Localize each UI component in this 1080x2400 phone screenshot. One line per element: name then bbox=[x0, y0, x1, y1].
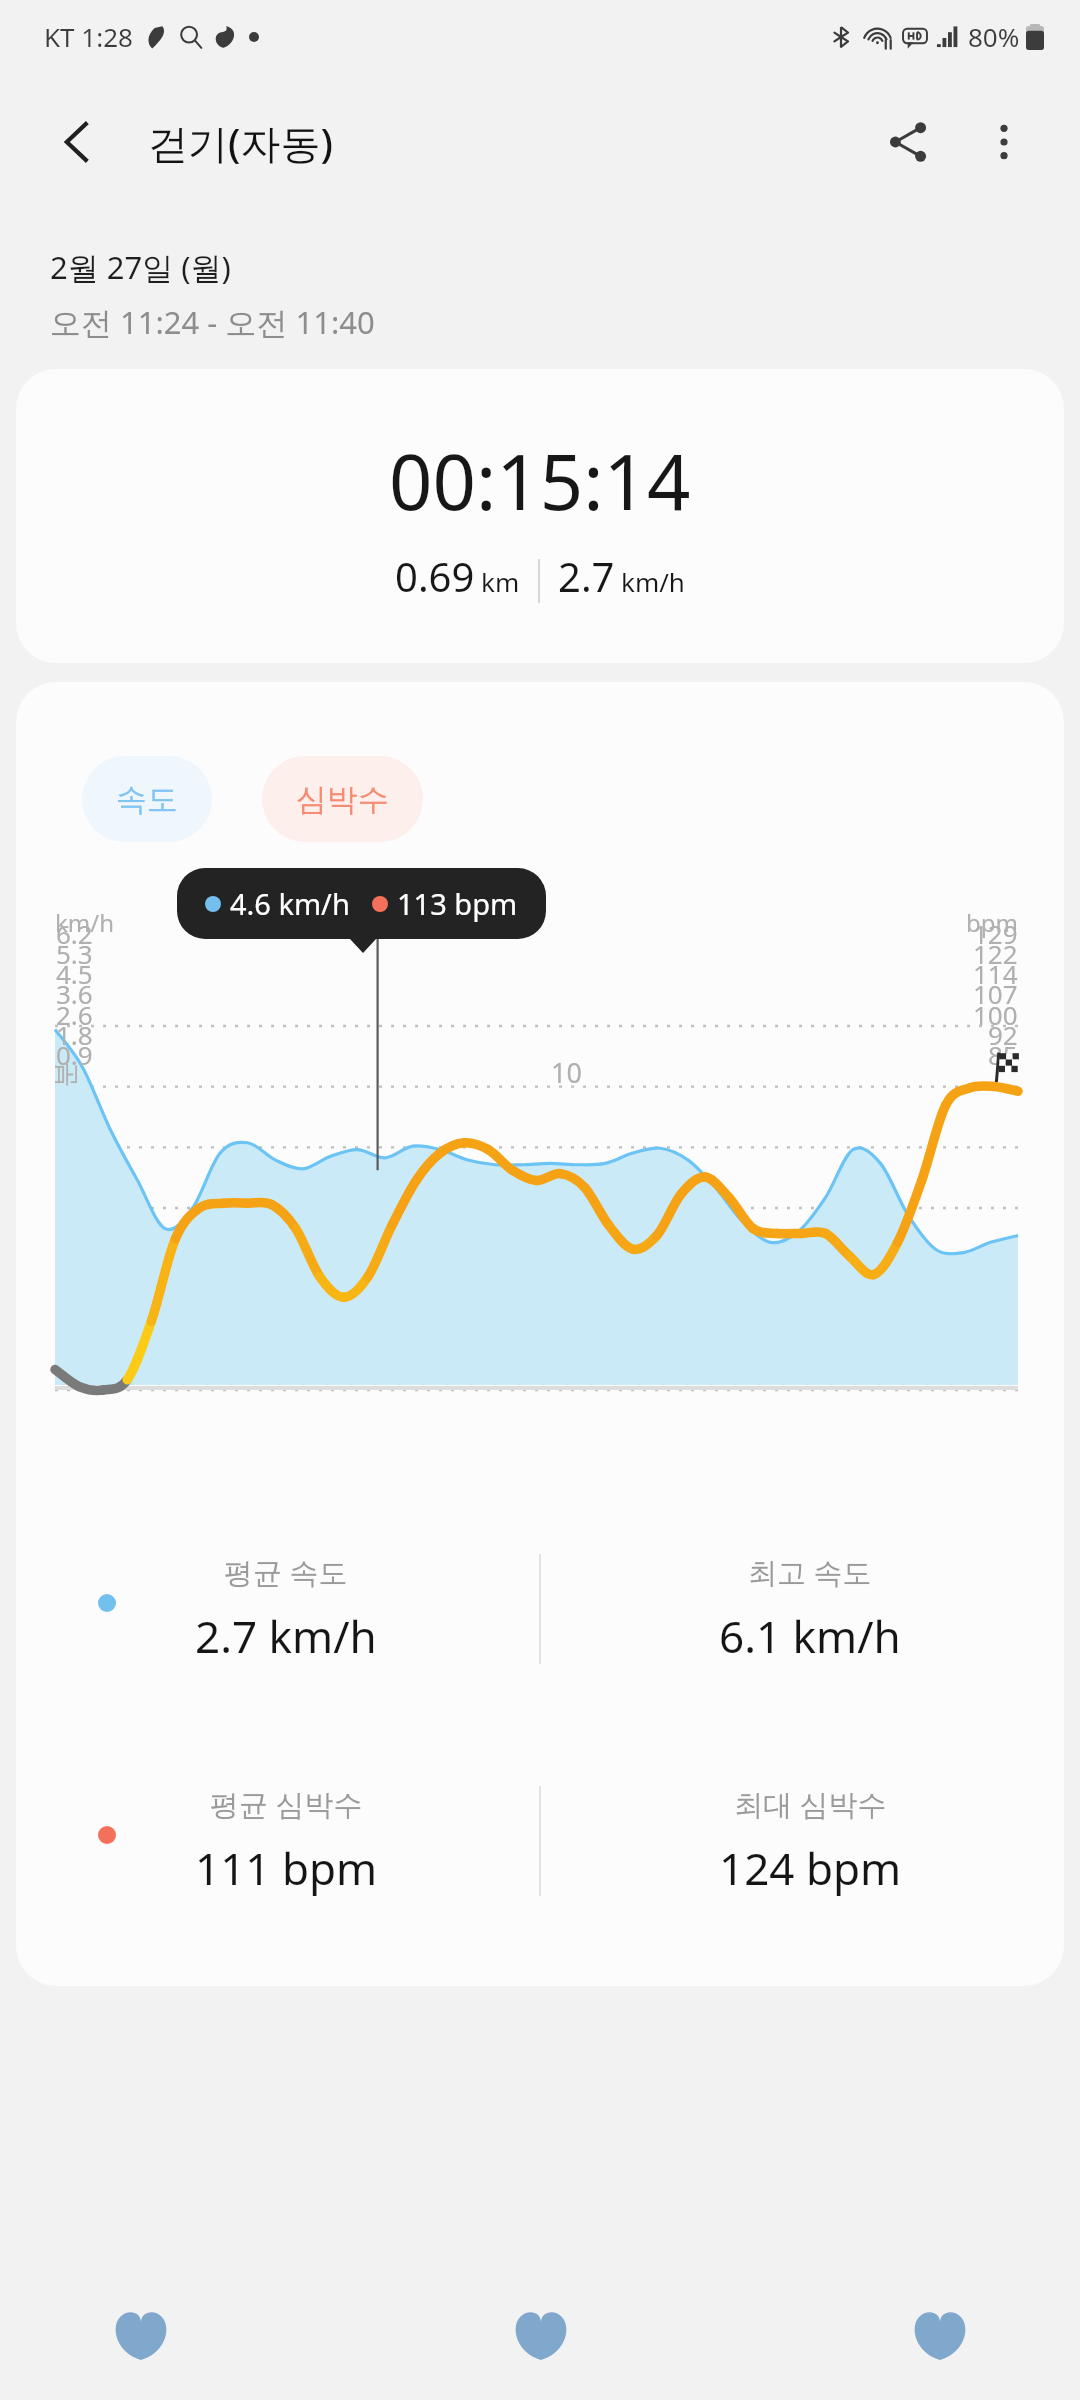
button[interactable]: Home bbox=[400, 2266, 681, 2400]
staticText: 0.69 bbox=[395, 549, 475, 603]
staticText: 111 bpm bbox=[195, 1838, 378, 1898]
button[interactable]: 00:15:14 bbox=[16, 369, 1064, 663]
staticText: bpm bbox=[966, 906, 1018, 939]
staticText: 5.3 bbox=[56, 936, 93, 971]
staticText: 2.7 bbox=[558, 549, 615, 603]
staticText: km/h bbox=[621, 564, 685, 599]
staticText: 3.6 bbox=[56, 976, 93, 1011]
staticText: 00:15:14 bbox=[389, 429, 691, 533]
staticText: 1.8 bbox=[56, 1017, 93, 1052]
staticText: 2월 27일 (월) bbox=[50, 246, 231, 288]
button[interactable]: More options bbox=[968, 106, 1040, 178]
staticText: 4.5 bbox=[56, 956, 93, 991]
staticText: 최고 속도 bbox=[748, 1552, 872, 1592]
staticText: 10 bbox=[551, 1054, 582, 1091]
staticText: 122 bbox=[973, 936, 1018, 971]
staticText: 분 bbox=[48, 1061, 81, 1087]
staticText: 걷기(자동) bbox=[148, 115, 333, 170]
staticText: 최대 심박수 bbox=[734, 1784, 887, 1824]
button[interactable]: Share bbox=[872, 106, 944, 178]
button[interactable]: 최대 심박수 bbox=[540, 1766, 1064, 1916]
staticText: 124 bpm bbox=[719, 1838, 902, 1898]
staticText: 85 bbox=[988, 1037, 1018, 1072]
staticText: 114 bbox=[973, 956, 1018, 991]
button[interactable]: 평균 속도 bbox=[16, 1534, 540, 1684]
staticText: 평균 심박수 bbox=[210, 1784, 363, 1824]
staticText: 0.9 bbox=[56, 1037, 93, 1072]
staticText: 2.7 km/h bbox=[195, 1606, 377, 1666]
button[interactable]: Back bbox=[799, 2266, 1080, 2400]
staticText: 평균 속도 bbox=[224, 1552, 348, 1592]
staticText: 2.6 bbox=[56, 997, 93, 1032]
staticText: km bbox=[481, 564, 520, 599]
button[interactable]: 평균 심박수 bbox=[16, 1766, 540, 1916]
button[interactable]: Back bbox=[50, 114, 106, 170]
staticText: 6.1 km/h bbox=[719, 1606, 901, 1666]
staticText: 129 bbox=[973, 916, 1018, 951]
button[interactable]: 심박수 bbox=[262, 756, 423, 842]
staticText: 92 bbox=[988, 1017, 1018, 1052]
staticText: 100 bbox=[973, 997, 1018, 1032]
button[interactable]: Recents bbox=[0, 2266, 281, 2400]
staticText: 오전 11:24 - 오전 11:40 bbox=[50, 301, 375, 343]
staticText: 80% bbox=[968, 19, 1020, 54]
staticText: 6.2 bbox=[56, 916, 93, 951]
staticText: KT 1:28 bbox=[44, 19, 133, 54]
button[interactable]: 최고 속도 bbox=[540, 1534, 1064, 1684]
staticText: 심박수 bbox=[296, 780, 389, 819]
button[interactable]: 속도 bbox=[82, 756, 212, 842]
staticText: 113 bpm bbox=[397, 884, 518, 923]
staticText: 속도 bbox=[116, 780, 178, 819]
staticText: 107 bbox=[973, 976, 1018, 1011]
staticText: 4.6 km/h bbox=[230, 884, 350, 923]
staticText: km/h bbox=[55, 906, 115, 939]
